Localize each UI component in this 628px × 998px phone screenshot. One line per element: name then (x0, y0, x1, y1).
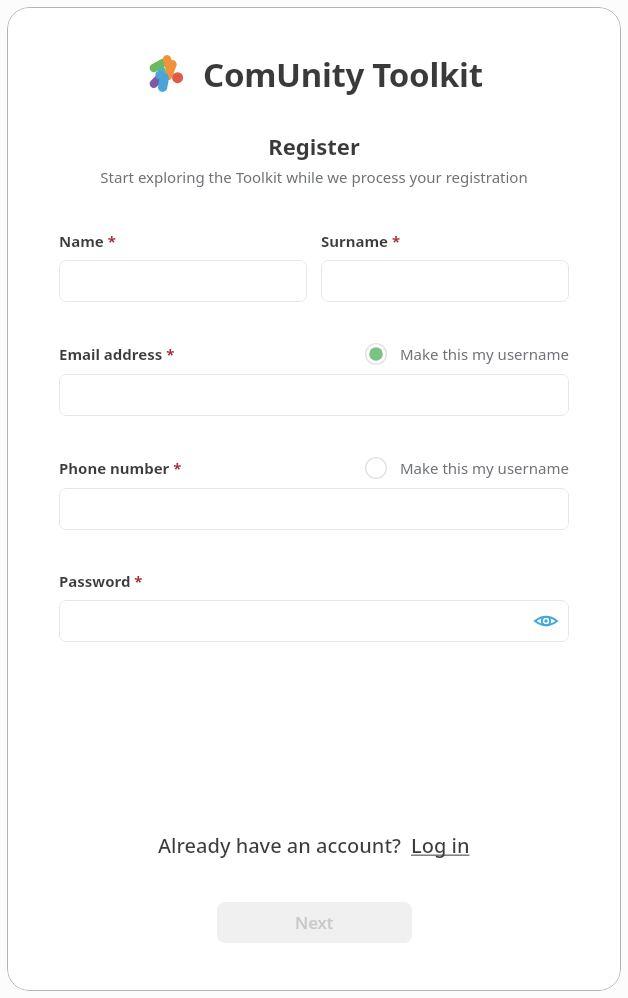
button[interactable] (59, 488, 569, 530)
staticText: Password * (59, 571, 143, 591)
staticText: Email address * (59, 344, 175, 364)
staticText: Log in (411, 832, 470, 859)
staticText: Next (295, 911, 334, 934)
button[interactable]: Show password (531, 606, 561, 636)
staticText: Make this my username (400, 458, 569, 478)
staticText: Register (7, 131, 621, 161)
button[interactable]: Next (217, 902, 412, 943)
button[interactable]: Show password (59, 600, 569, 642)
staticText: Make this my username (400, 344, 569, 364)
staticText: ComUnity Toolkit (203, 52, 483, 97)
staticText: Already have an account? (158, 832, 401, 859)
button[interactable] (59, 260, 307, 302)
button[interactable]: Make this my username (365, 343, 569, 365)
staticText: Start exploring the Toolkit while we pro… (55, 167, 573, 187)
button[interactable] (59, 374, 569, 416)
staticText: Phone number * (59, 458, 182, 478)
button[interactable] (321, 260, 569, 302)
staticText: Name * (59, 231, 116, 251)
button[interactable]: Log in (411, 832, 470, 859)
staticText: Surname * (321, 231, 401, 251)
button[interactable]: Make this my username (365, 457, 569, 479)
